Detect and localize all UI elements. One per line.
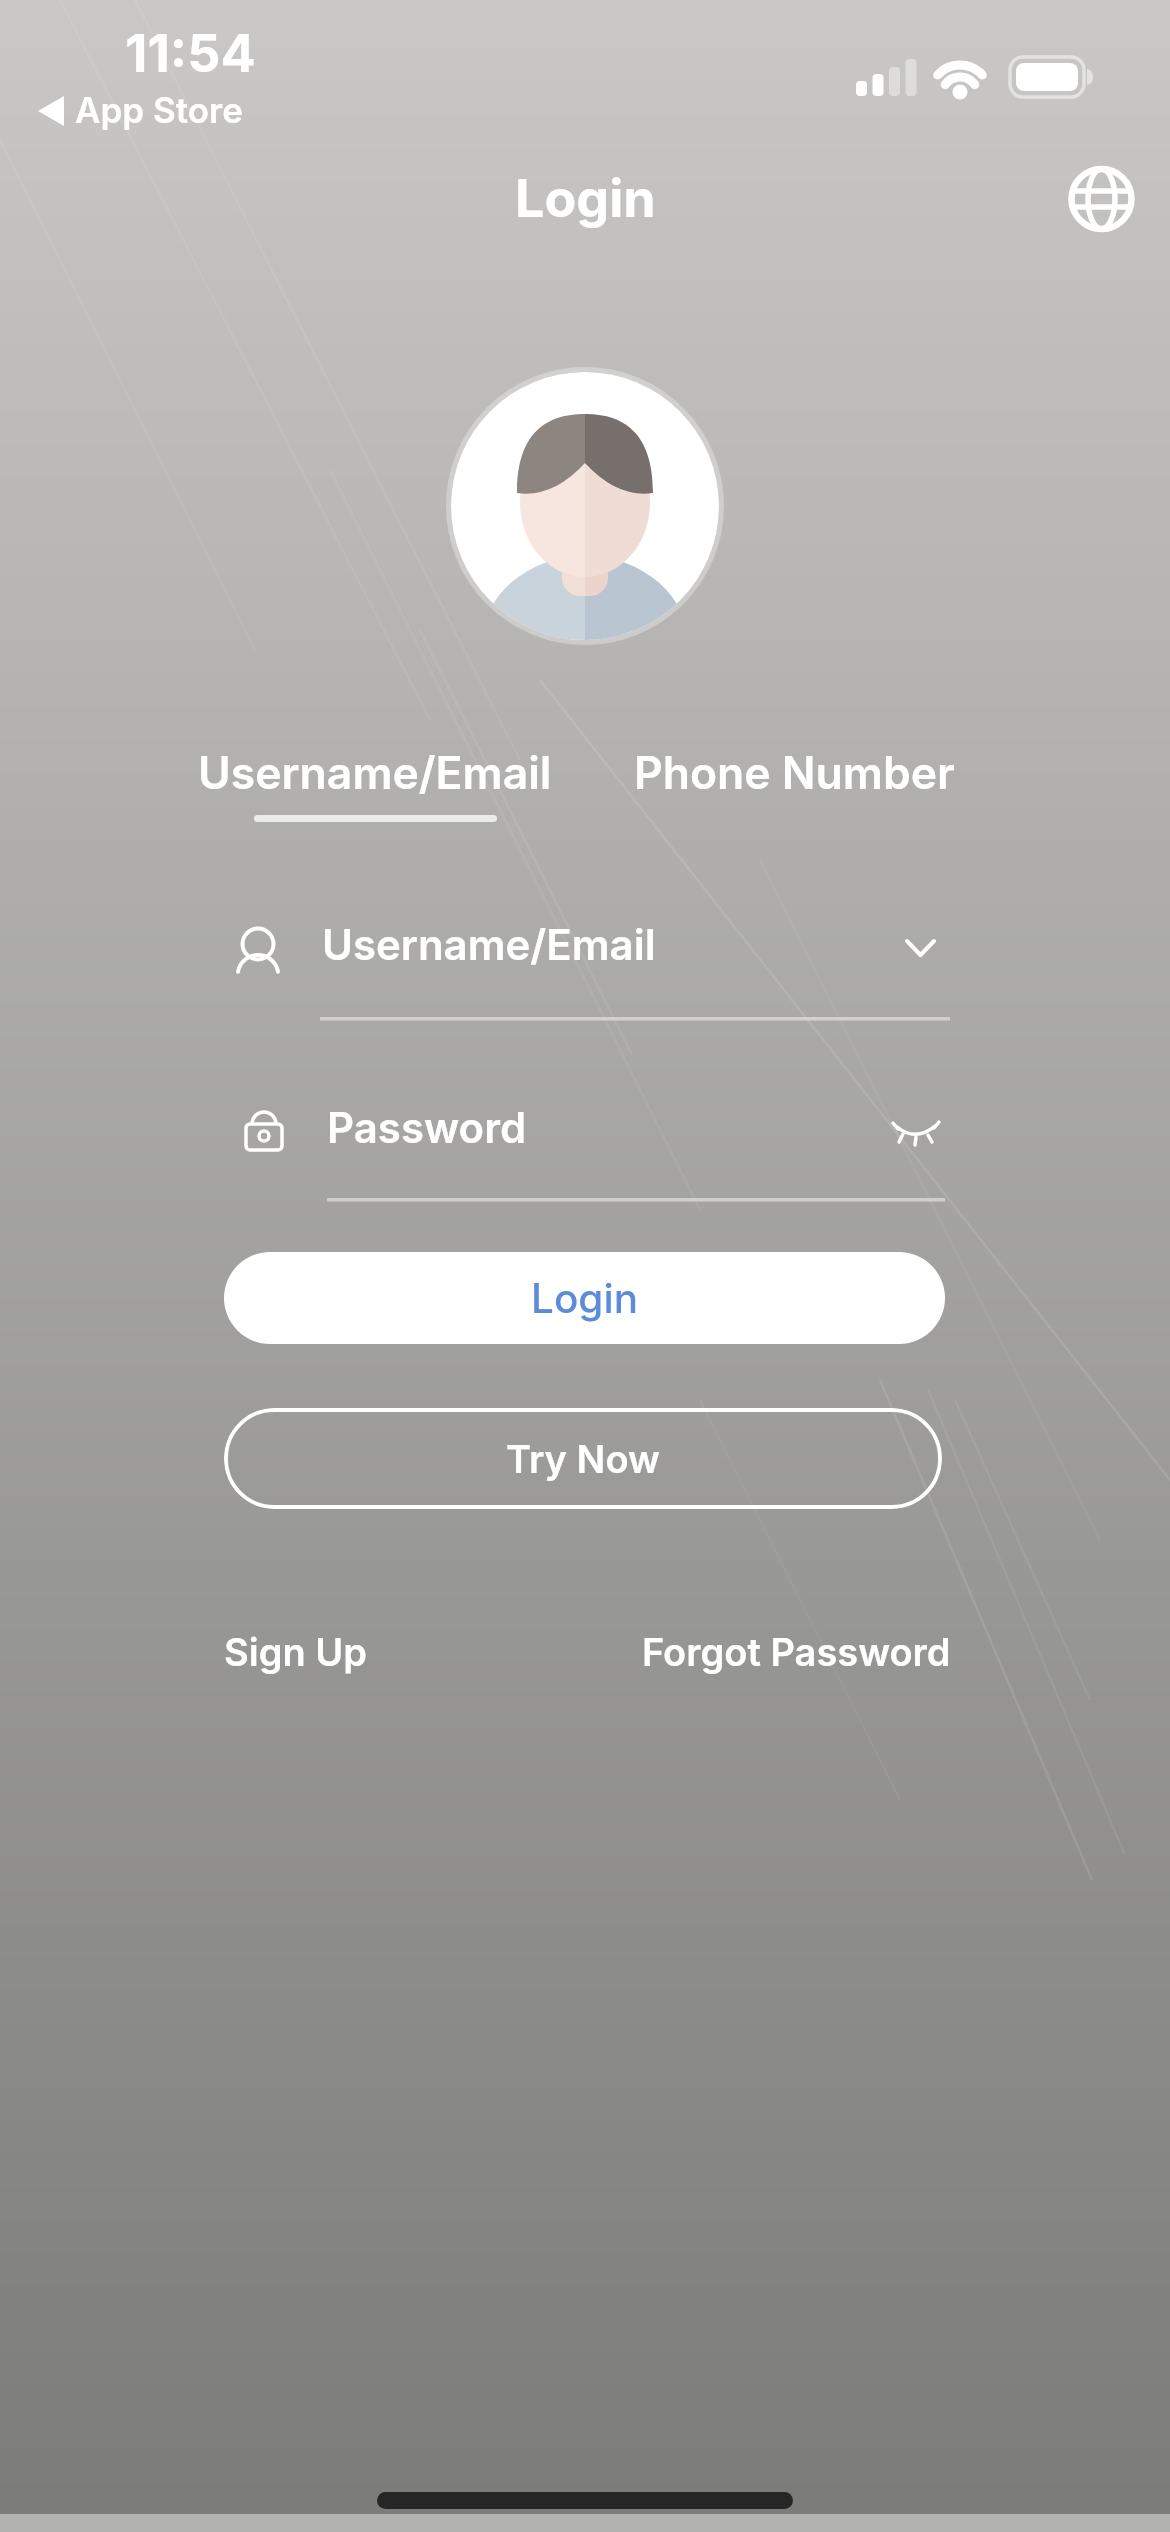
button[interactable]: Forgot Password	[596, 1612, 996, 1692]
staticText: Login	[515, 167, 656, 230]
button[interactable]: Try Now	[224, 1408, 942, 1509]
button[interactable]: Password	[224, 1086, 952, 1204]
staticText: Username/Email	[322, 919, 656, 969]
staticText: 11:54	[125, 22, 256, 82]
staticText: Phone Number	[634, 746, 955, 800]
staticText: Login	[531, 1274, 639, 1323]
button[interactable]: Phone Number	[614, 744, 974, 802]
staticText: Sign Up	[224, 1629, 367, 1675]
button[interactable]	[1062, 160, 1140, 238]
button[interactable]: Login	[224, 1252, 945, 1344]
staticText: App Store	[75, 89, 243, 131]
staticText: Forgot Password	[642, 1629, 951, 1675]
button[interactable]: Username/Email	[224, 905, 952, 1020]
staticText: Username/Email	[198, 746, 552, 800]
button[interactable]: Sign Up	[200, 1612, 390, 1692]
staticText: Password	[327, 1102, 527, 1152]
button[interactable]: Username/Email	[175, 744, 575, 802]
button[interactable]: App Store	[30, 86, 260, 134]
staticText: Try Now	[506, 1436, 660, 1482]
